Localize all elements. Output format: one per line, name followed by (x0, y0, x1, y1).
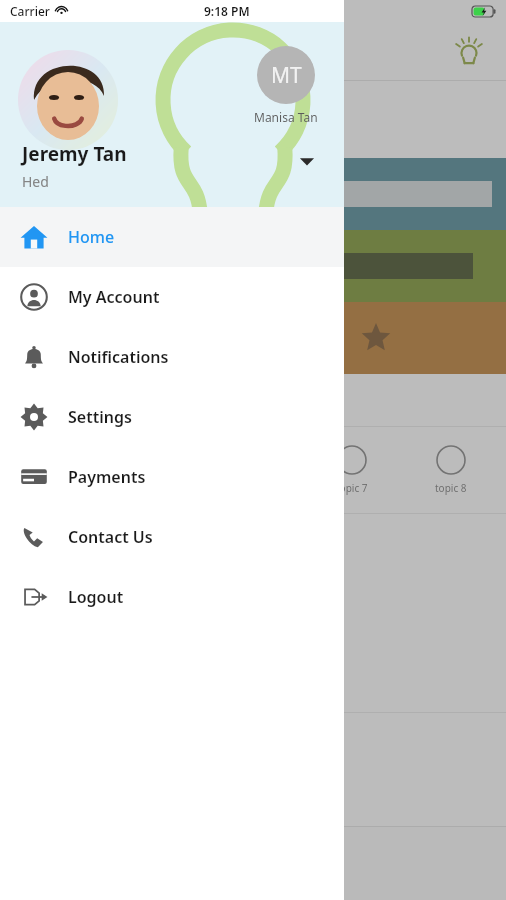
button[interactable]: Profile photo (18, 50, 118, 150)
button[interactable]: Payments (0, 447, 344, 507)
staticText: Settings (68, 406, 132, 428)
staticText: Payments (68, 466, 146, 488)
staticText: topic 5 (138, 481, 170, 495)
button[interactable]: Your Teacher (0, 837, 506, 890)
staticText: How many boys and girls are there in you… (16, 95, 247, 144)
button[interactable]: Home (0, 207, 344, 267)
staticText: Jeremy Tan (22, 141, 127, 167)
button[interactable]: topic 7 (302, 445, 401, 495)
button[interactable]: Contact Us (0, 507, 344, 567)
button[interactable]: topic 8 (401, 445, 500, 495)
button[interactable]: Logout (0, 567, 344, 627)
staticText: Notifications (68, 346, 169, 368)
staticText: 9:18 PM (204, 3, 250, 19)
staticText: topic 4 (39, 481, 71, 495)
button[interactable]: My Account (0, 267, 344, 327)
button[interactable]: Switch account (296, 150, 318, 172)
button[interactable] (0, 158, 506, 230)
other: Hint (452, 34, 486, 68)
staticText: Home (68, 226, 115, 248)
button[interactable]: Notifications (0, 327, 344, 387)
staticText: topic 8 (435, 481, 467, 495)
button[interactable]: Settings (0, 387, 344, 447)
button[interactable]: topic 4 (6, 445, 104, 495)
button[interactable] (0, 302, 506, 374)
staticText: Carrier (10, 3, 50, 19)
staticText: Hed (22, 172, 49, 191)
button[interactable]: topic 5 (104, 445, 203, 495)
button[interactable] (0, 230, 506, 302)
staticText: Contact Us (68, 526, 153, 548)
staticText: topic 7 (336, 481, 368, 495)
staticText: My Account (68, 286, 160, 308)
staticText: Manisa Tan (254, 109, 318, 125)
staticText: Logout (68, 586, 124, 608)
button[interactable]: MT (254, 46, 318, 125)
staticText: MT (271, 61, 302, 90)
